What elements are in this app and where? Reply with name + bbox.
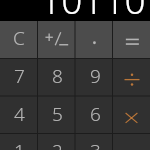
staticText: C [13,25,25,51]
button[interactable]: C [0,21,38,59]
button[interactable]: 9 [76,59,114,97]
button[interactable]: Multiply [114,97,150,135]
staticText: 2 [52,138,63,150]
button[interactable]: 2 [38,134,76,150]
button[interactable]: 3 [76,134,114,150]
staticText: 1 [14,138,25,150]
button[interactable]: 5 [38,97,76,135]
staticText: 10110 [40,0,146,24]
staticText: 7 [14,63,25,89]
button[interactable]: 4 [0,97,38,135]
button[interactable]: 1 [0,134,38,150]
button[interactable]: Equals [114,21,150,59]
staticText: 6 [90,101,101,127]
staticText: 4 [14,101,25,127]
button[interactable]: 8 [38,59,76,97]
button[interactable]: 6 [76,97,114,135]
staticText: 8 [52,63,63,89]
button[interactable]: Plus minus [38,21,76,59]
button[interactable]: 7 [0,59,38,97]
staticText: 9 [90,63,101,89]
button[interactable]: Divide [114,59,150,97]
staticText: 3 [90,138,101,150]
staticText: 5 [52,101,63,127]
button[interactable]: Decimal point [76,21,114,59]
